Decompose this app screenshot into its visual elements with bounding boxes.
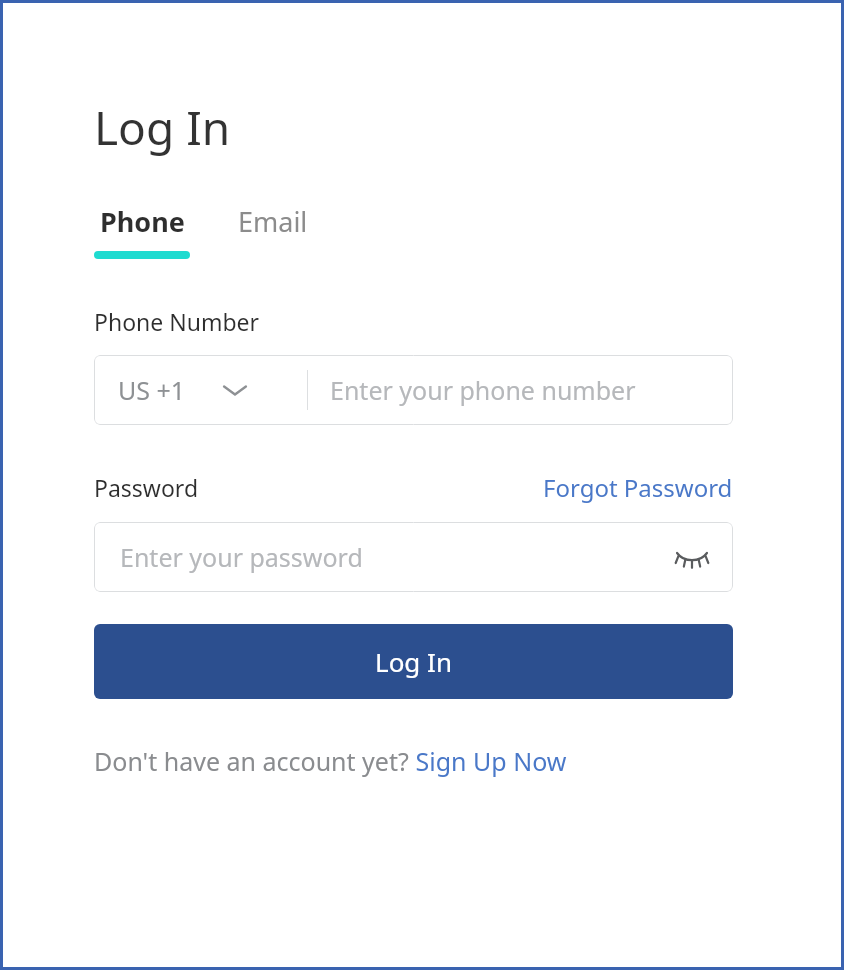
staticText: Sign Up Now [409, 744, 567, 778]
button[interactable]: Email [238, 203, 308, 240]
staticText: Phone [100, 203, 185, 240]
button[interactable]: Show password [661, 526, 723, 588]
staticText: Log In [94, 96, 231, 159]
staticText: US +1 [118, 373, 186, 407]
button[interactable]: Sign Up Now [409, 744, 567, 778]
staticText: Don't have an account yet? [94, 744, 409, 778]
staticText: Password [94, 472, 199, 503]
staticText: Phone Number [94, 306, 260, 337]
staticText: Email [238, 203, 308, 240]
staticText: Forgot Password [543, 471, 733, 504]
button[interactable]: US +1 [94, 355, 307, 425]
button[interactable]: Forgot Password [543, 471, 733, 504]
staticText: Enter your password [120, 540, 363, 574]
button[interactable]: Phone [94, 203, 190, 259]
staticText: Log In [375, 644, 452, 679]
button[interactable]: Enter your password [94, 522, 733, 592]
button[interactable]: Log In [94, 624, 733, 699]
staticText: Enter your phone number [330, 373, 636, 407]
button[interactable]: Enter your phone number [308, 355, 733, 425]
